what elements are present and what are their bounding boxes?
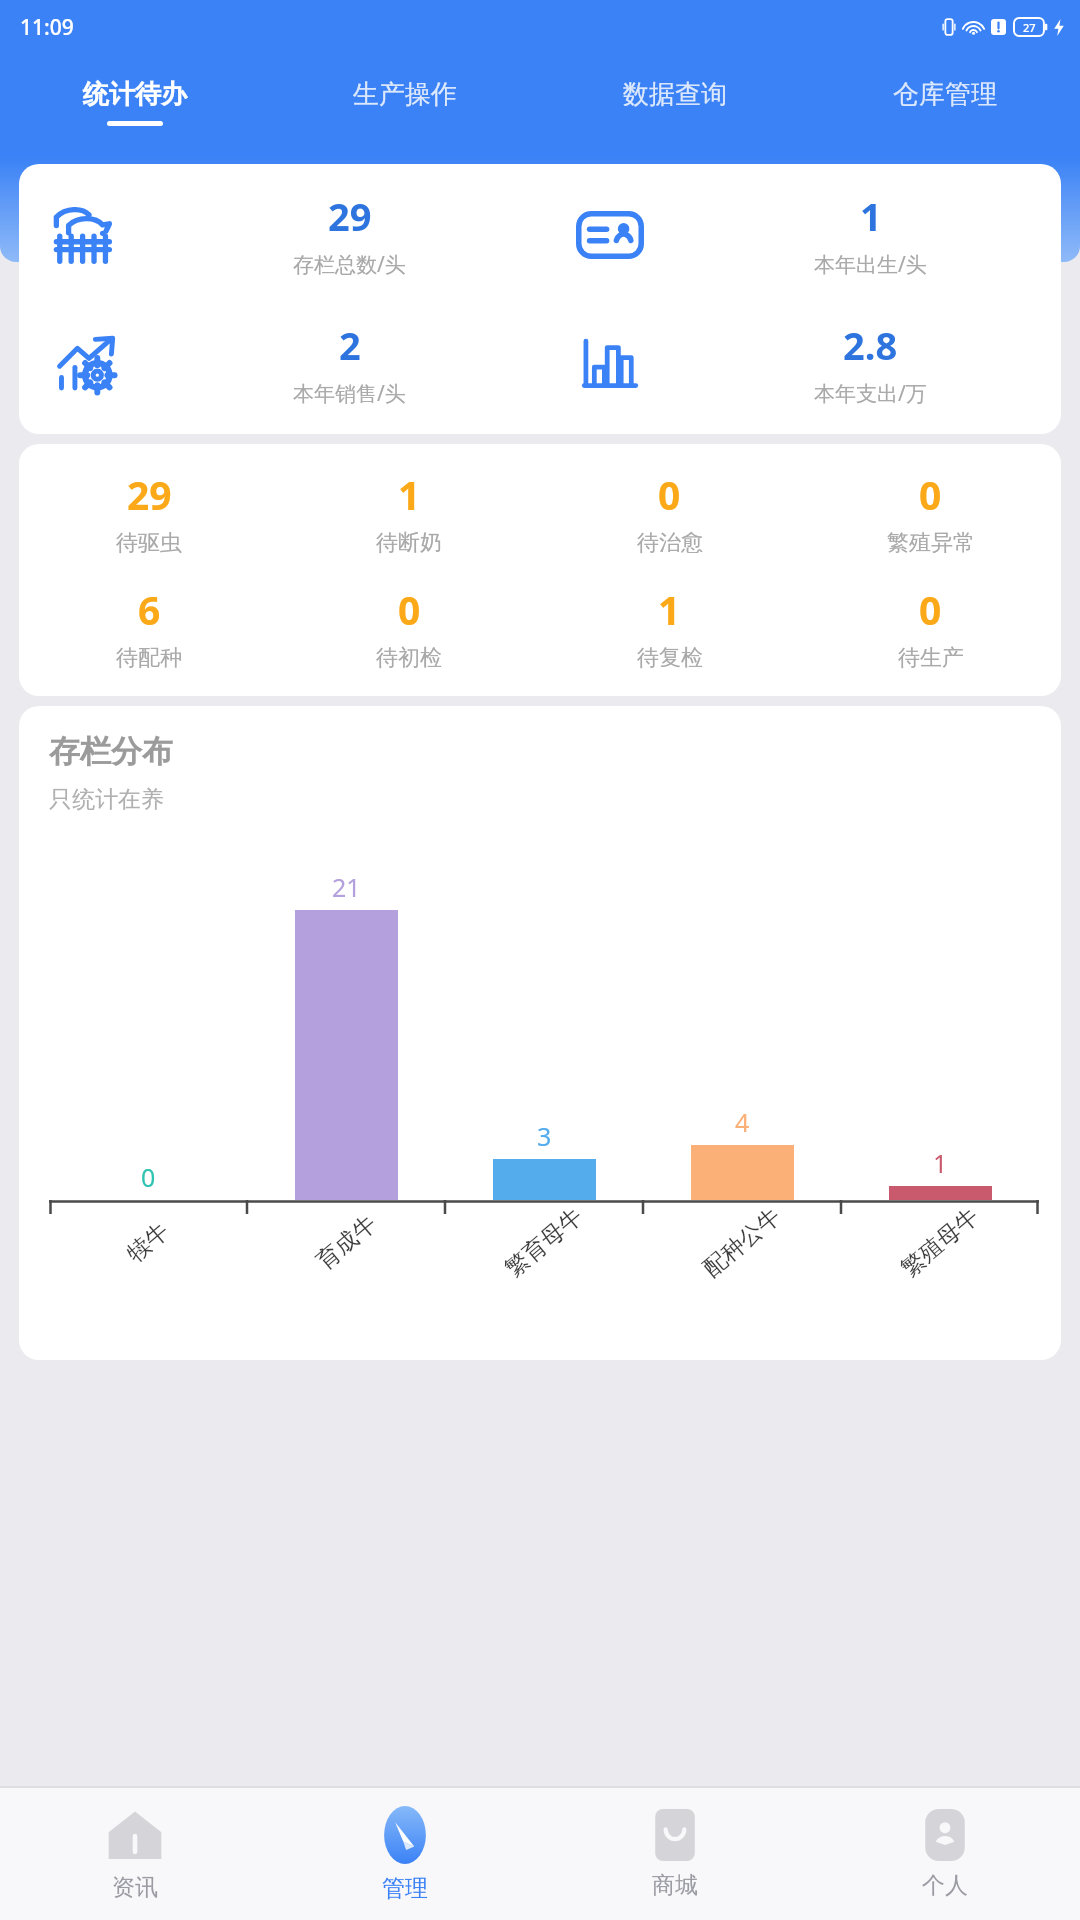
button[interactable]: 统计待办	[0, 54, 270, 150]
staticText: 3	[537, 1119, 552, 1153]
button[interactable]: 管理	[270, 1788, 540, 1920]
staticText: 本年销售/头	[293, 379, 406, 408]
button[interactable]: 生产操作	[270, 54, 540, 150]
staticText: 1	[398, 468, 421, 521]
staticText: 4	[735, 1105, 750, 1139]
staticText: 数据查询	[623, 78, 727, 111]
staticText: 27	[1023, 20, 1036, 35]
staticText: 待驱虫	[116, 529, 182, 557]
staticText: 繁育母牛	[499, 1202, 588, 1283]
staticText: 0	[919, 583, 942, 636]
button[interactable]: 0	[279, 583, 539, 672]
other: 资讯	[107, 1807, 163, 1863]
staticText: 存栏分布	[49, 732, 173, 771]
staticText: 待断奶	[376, 529, 442, 557]
staticText: 1	[860, 190, 882, 242]
staticText: 育成牛	[311, 1209, 382, 1276]
button[interactable]: 29	[19, 468, 279, 557]
button[interactable]: 个人	[810, 1788, 1080, 1920]
staticText: 仓库管理	[893, 78, 997, 111]
button[interactable]: 2.8	[540, 319, 1061, 408]
staticText: 29	[127, 468, 172, 521]
staticText: 6	[138, 583, 161, 636]
staticText: 1	[658, 583, 681, 636]
other: 商城	[649, 1809, 701, 1861]
button[interactable]: 数据查询	[540, 54, 810, 150]
other: 管理	[376, 1806, 434, 1864]
staticText: 个人	[922, 1871, 968, 1900]
staticText: 统计待办	[83, 78, 187, 111]
staticText: 2.8	[843, 319, 898, 371]
staticText: 商城	[652, 1871, 698, 1900]
staticText: 本年出生/头	[814, 250, 927, 279]
staticText: 配种公牛	[697, 1202, 786, 1283]
staticText: 2	[339, 319, 361, 371]
button[interactable]: 0	[800, 583, 1061, 672]
staticText: 11:09	[20, 13, 74, 42]
staticText: 本年支出/万	[814, 379, 927, 408]
staticText: 犊牛	[121, 1217, 175, 1268]
staticText: 繁殖母牛	[895, 1202, 984, 1283]
staticText: 待治愈	[637, 529, 703, 557]
button[interactable]: 29	[19, 190, 540, 279]
staticText: 繁殖异常	[887, 529, 975, 557]
button[interactable]: 0	[539, 468, 800, 557]
button[interactable]: 资讯	[0, 1788, 270, 1920]
staticText: 待初检	[376, 644, 442, 672]
button[interactable]: 仓库管理	[810, 54, 1080, 150]
button[interactable]: 6	[19, 583, 279, 672]
staticText: 待配种	[116, 644, 182, 672]
staticText: 资讯	[112, 1873, 158, 1902]
staticText: 存栏总数/头	[293, 250, 406, 279]
staticText: 0	[658, 468, 681, 521]
other: 个人	[919, 1809, 971, 1861]
button[interactable]: 1	[540, 190, 1061, 279]
button[interactable]: 商城	[540, 1788, 810, 1920]
staticText: 1	[933, 1146, 948, 1180]
staticText: 待复检	[637, 644, 703, 672]
button[interactable]: 2	[19, 319, 540, 408]
button[interactable]: 1	[539, 583, 800, 672]
button[interactable]: 1	[279, 468, 539, 557]
staticText: 只统计在养	[49, 785, 164, 814]
staticText: 待生产	[898, 644, 964, 672]
staticText: 29	[328, 190, 372, 242]
staticText: 0	[919, 468, 942, 521]
staticText: 0	[398, 583, 421, 636]
staticText: 0	[141, 1160, 156, 1194]
staticText: 生产操作	[353, 78, 457, 111]
staticText: 管理	[382, 1874, 428, 1903]
staticText: 21	[332, 870, 361, 904]
button[interactable]: 0	[800, 468, 1061, 557]
